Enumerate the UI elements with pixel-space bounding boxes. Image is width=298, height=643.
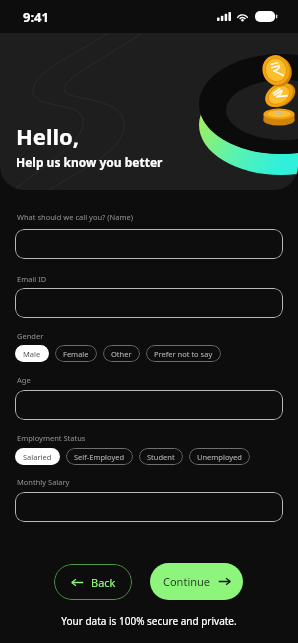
staticText: Help us know you better: [16, 154, 163, 170]
staticText: Email ID: [17, 274, 47, 284]
staticText: Student: [147, 452, 175, 462]
staticText: Prefer not to say: [154, 349, 213, 359]
staticText: Back: [91, 575, 116, 590]
staticText: Employment Status: [17, 433, 86, 443]
staticText: Continue: [163, 574, 211, 589]
button[interactable]: Male: [15, 345, 49, 362]
button[interactable]: [15, 288, 283, 318]
staticText: What should we call you? (Name): [17, 212, 133, 222]
staticText: Salaried: [23, 452, 52, 462]
staticText: Monthly Salary: [17, 477, 70, 487]
button[interactable]: Prefer not to say: [146, 345, 221, 362]
button[interactable]: Self-Employed: [66, 448, 133, 465]
staticText: Age: [17, 375, 31, 385]
staticText: Female: [63, 349, 89, 359]
staticText: Male: [23, 349, 41, 359]
staticText: Unemployed: [197, 452, 242, 462]
staticText: Hello,: [16, 121, 80, 151]
staticText: 9:41: [23, 8, 49, 26]
staticText: Your data is 100% secure and private.: [0, 614, 298, 628]
button[interactable]: [15, 229, 283, 259]
button[interactable]: Female: [55, 345, 97, 362]
button[interactable]: [15, 390, 283, 420]
button[interactable]: Student: [139, 448, 183, 465]
button[interactable]: [15, 492, 283, 522]
button[interactable]: Other: [103, 345, 140, 362]
button[interactable]: Unemployed: [189, 448, 250, 465]
button[interactable]: Continue: [150, 563, 243, 600]
button[interactable]: Back: [54, 564, 132, 600]
staticText: Gender: [17, 331, 44, 341]
staticText: Self-Employed: [74, 452, 125, 462]
button[interactable]: Salaried: [15, 448, 60, 465]
staticText: Other: [111, 349, 132, 359]
